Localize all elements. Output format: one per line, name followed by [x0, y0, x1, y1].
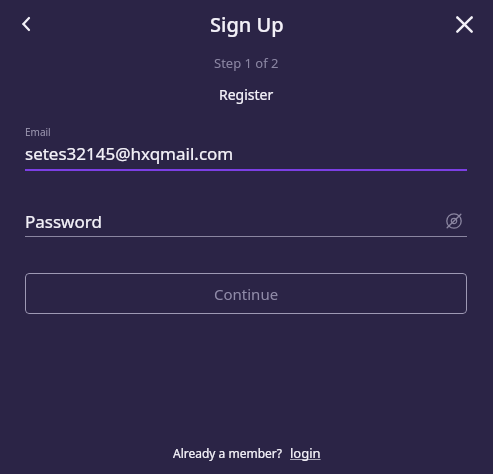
button[interactable]: Show password — [441, 208, 467, 234]
button[interactable]: Email — [25, 125, 467, 171]
staticText: Already a member? — [173, 445, 282, 461]
staticText: Continue — [214, 284, 279, 304]
button[interactable]: Close — [446, 6, 482, 42]
staticText: Step 1 of 2 — [214, 54, 279, 72]
staticText: login — [290, 444, 321, 462]
button[interactable]: Back — [9, 6, 45, 42]
staticText: Email — [25, 125, 51, 139]
button[interactable]: Continue — [25, 273, 467, 314]
staticText: Sign Up — [210, 11, 284, 38]
staticText: Password — [25, 210, 102, 233]
button[interactable]: Password — [25, 208, 467, 234]
staticText: Register — [219, 85, 274, 104]
button[interactable]: login — [290, 444, 321, 462]
staticText: setes32145@hxqmail.com — [25, 142, 234, 165]
